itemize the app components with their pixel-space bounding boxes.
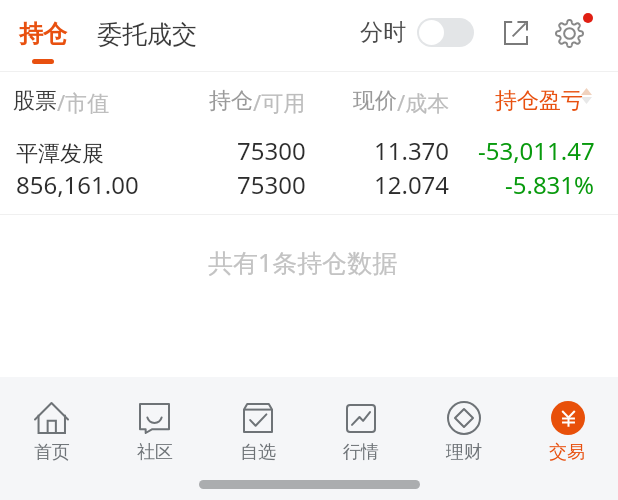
staticText: 12.074 [374,168,450,201]
staticText: 持仓 [19,19,67,49]
button[interactable]: 分时 [350,12,478,54]
button[interactable]: 委托成交 [84,0,208,66]
staticText: 856,161.00 [16,168,139,201]
button[interactable]: 理财 [412,377,515,464]
staticText: 社区 [137,441,173,464]
button[interactable]: 自选 [206,377,309,464]
other: Time chart toggle [417,18,474,47]
button[interactable]: 持仓盈亏 [489,79,601,111]
staticText: /可用 [253,87,306,117]
staticText: 交易 [549,441,585,464]
staticText: 理财 [446,441,482,464]
button[interactable]: 首页 [0,377,103,464]
button[interactable]: Settings [551,13,594,56]
staticText: 平潭发展 [16,140,104,168]
staticText: 首页 [34,441,70,464]
staticText: 分时 [360,18,406,47]
staticText: 共有1条持仓数据 [208,245,398,279]
button[interactable]: 社区 [103,377,206,464]
staticText: 自选 [240,441,276,464]
staticText: 11.370 [374,134,450,167]
staticText: /成本 [397,87,450,117]
button[interactable]: 持仓 [0,0,84,71]
staticText: 75300 [237,168,306,201]
staticText: 持仓盈亏 [495,87,583,115]
staticText: 委托成交 [97,19,197,50]
staticText: /市值 [57,87,110,117]
staticText: -53,011.47 [478,134,595,167]
button[interactable]: 交易 [515,377,618,464]
button[interactable]: 行情 [309,377,412,464]
button[interactable]: 平潭发展 [0,122,618,214]
staticText: 持仓 [209,87,253,115]
staticText: -5.831% [505,168,595,201]
staticText: 行情 [343,441,379,464]
staticText: 75300 [237,134,306,167]
button[interactable]: Share [496,13,536,53]
staticText: 现价 [353,87,397,115]
staticText: 股票 [13,87,57,115]
